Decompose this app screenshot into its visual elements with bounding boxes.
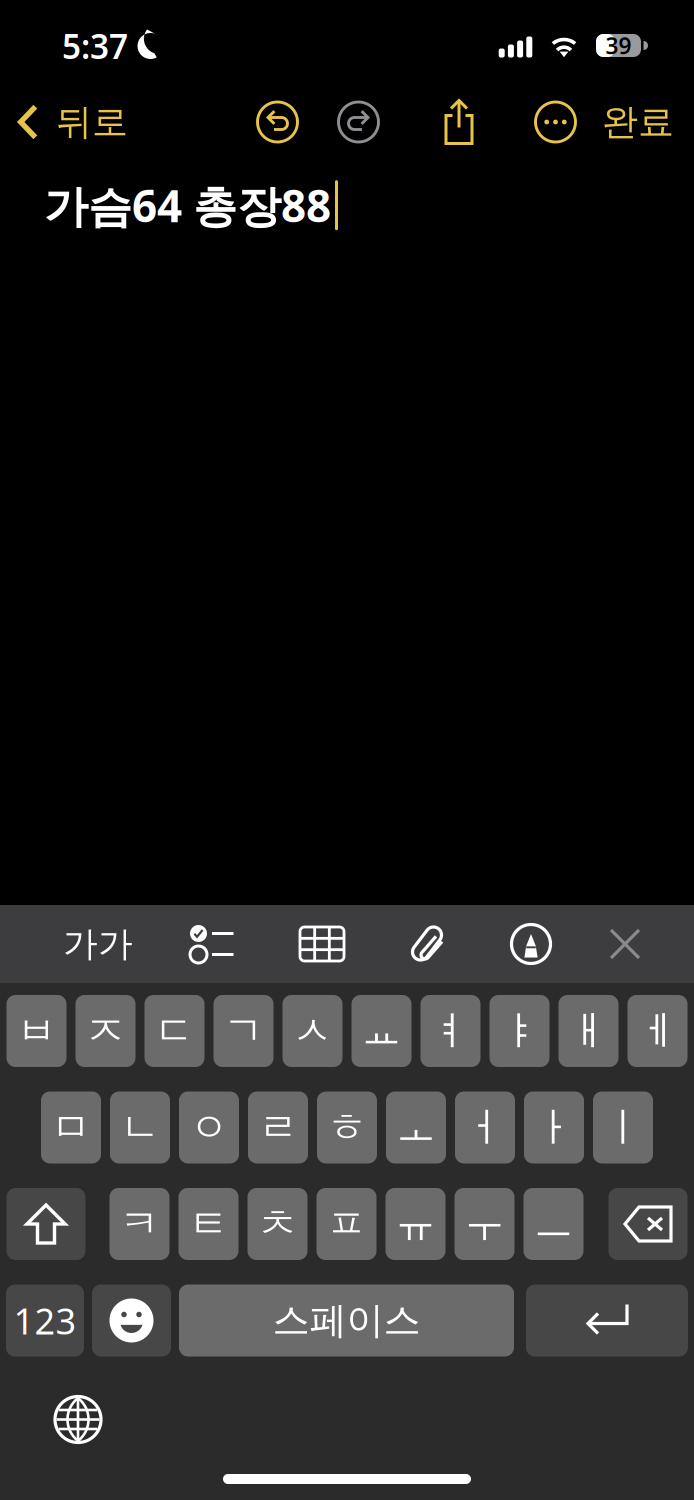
button[interactable]: Return bbox=[526, 1284, 688, 1356]
button[interactable]: ㅐ bbox=[558, 995, 618, 1067]
button[interactable]: ㅑ bbox=[489, 995, 549, 1067]
button[interactable]: ㅕ bbox=[420, 995, 480, 1067]
staticText: ㄱ bbox=[223, 1006, 263, 1055]
staticText: ㄷ bbox=[154, 1006, 194, 1055]
staticText: ㅕ bbox=[430, 1006, 470, 1055]
button[interactable]: ㅌ bbox=[178, 1188, 238, 1260]
staticText: ㅎ bbox=[327, 1103, 367, 1152]
staticText: ㅡ bbox=[533, 1199, 573, 1248]
button[interactable]: ㅂ bbox=[6, 995, 66, 1067]
button[interactable]: 가가 bbox=[52, 905, 144, 983]
button[interactable]: Undo bbox=[241, 82, 313, 162]
button[interactable]: ㅗ bbox=[386, 1091, 446, 1163]
button[interactable]: ㅊ bbox=[247, 1188, 307, 1260]
button[interactable]: ㅍ bbox=[316, 1188, 376, 1260]
button[interactable]: More bbox=[519, 82, 591, 162]
button[interactable]: ㄴ bbox=[110, 1091, 170, 1163]
button[interactable]: ㅓ bbox=[455, 1091, 515, 1163]
staticText: ㅠ bbox=[395, 1199, 435, 1248]
staticText: ㄹ bbox=[258, 1103, 298, 1152]
button[interactable]: 스페이스 bbox=[179, 1284, 514, 1356]
staticText: ㅊ bbox=[257, 1199, 297, 1248]
staticText: ㅑ bbox=[499, 1006, 539, 1055]
staticText: ㅛ bbox=[361, 1006, 401, 1055]
staticText: 5:37 bbox=[62, 24, 128, 68]
staticText: 가슴64 총장88 bbox=[44, 176, 331, 234]
staticText: 가가 bbox=[63, 923, 133, 965]
button[interactable]: 뒤로 bbox=[0, 82, 144, 162]
staticText: ㅋ bbox=[119, 1199, 159, 1248]
button[interactable]: Share bbox=[423, 82, 495, 162]
staticText: ㅗ bbox=[396, 1103, 436, 1152]
button[interactable]: Hide keyboard bbox=[579, 905, 671, 983]
staticText: ㅈ bbox=[85, 1006, 125, 1055]
button[interactable]: 완료 bbox=[590, 82, 686, 162]
button[interactable]: ㅠ bbox=[385, 1188, 445, 1260]
button[interactable]: Emoji bbox=[92, 1284, 171, 1356]
button[interactable]: ㅅ bbox=[282, 995, 342, 1067]
button[interactable]: Markup bbox=[485, 905, 577, 983]
staticText: 스페이스 bbox=[272, 1298, 420, 1343]
button[interactable]: Checklist bbox=[166, 905, 258, 983]
button[interactable]: ㄷ bbox=[144, 995, 204, 1067]
staticText: ㄴ bbox=[120, 1103, 160, 1152]
button[interactable]: ㅈ bbox=[75, 995, 135, 1067]
button[interactable]: ㄹ bbox=[248, 1091, 308, 1163]
staticText: ㅂ bbox=[16, 1006, 56, 1055]
staticText: ㅌ bbox=[188, 1199, 228, 1248]
button[interactable]: 123 bbox=[6, 1284, 84, 1356]
staticText: ㅇ bbox=[189, 1103, 229, 1152]
button[interactable]: Attach bbox=[381, 905, 473, 983]
staticText: ㅜ bbox=[464, 1199, 504, 1248]
staticText: 완료 bbox=[602, 100, 674, 144]
button[interactable]: Shift bbox=[6, 1188, 85, 1260]
button[interactable]: ㅇ bbox=[179, 1091, 239, 1163]
staticText: ㅐ bbox=[568, 1006, 608, 1055]
staticText: ㅁ bbox=[51, 1103, 91, 1152]
button[interactable]: ㅋ bbox=[109, 1188, 169, 1260]
staticText: ㅅ bbox=[292, 1006, 332, 1055]
button[interactable]: ㅏ bbox=[524, 1091, 584, 1163]
button[interactable]: ㅁ bbox=[41, 1091, 101, 1163]
button[interactable]: Redo bbox=[322, 82, 394, 162]
staticText: ㅏ bbox=[534, 1103, 574, 1152]
button[interactable]: ㅔ bbox=[627, 995, 687, 1067]
button[interactable]: Table bbox=[276, 905, 368, 983]
button[interactable]: ㅎ bbox=[317, 1091, 377, 1163]
staticText: 39 bbox=[605, 30, 631, 60]
staticText: ㅔ bbox=[637, 1006, 677, 1055]
button[interactable]: ㄱ bbox=[213, 995, 273, 1067]
staticText: ㅓ bbox=[465, 1103, 505, 1152]
staticText: ㅍ bbox=[326, 1199, 366, 1248]
staticText: ㅣ bbox=[603, 1103, 643, 1152]
button[interactable]: Next keyboard bbox=[45, 1388, 111, 1450]
button[interactable]: Delete bbox=[608, 1188, 687, 1260]
button[interactable]: ㅣ bbox=[593, 1091, 653, 1163]
staticText: 123 bbox=[13, 1297, 76, 1344]
button[interactable]: ㅛ bbox=[351, 995, 411, 1067]
button[interactable]: ㅡ bbox=[523, 1188, 583, 1260]
button[interactable]: ㅜ bbox=[454, 1188, 514, 1260]
staticText: 뒤로 bbox=[56, 100, 128, 144]
